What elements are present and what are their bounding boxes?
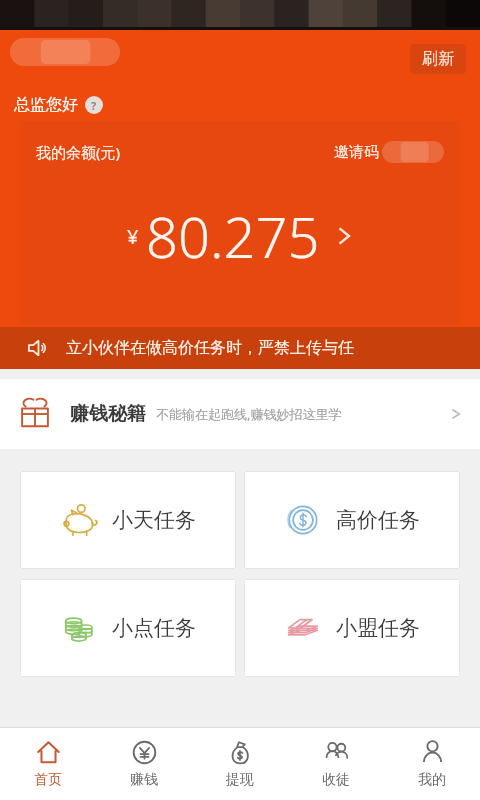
staticText: 我的余额(元): [36, 142, 121, 162]
button[interactable]: 首页: [0, 728, 96, 800]
staticText: 收徒: [322, 771, 350, 789]
button[interactable]: 赚钱: [96, 728, 192, 800]
staticText: 刷新: [422, 49, 454, 69]
button[interactable]: 我的余额(元): [20, 121, 460, 325]
staticText: 不能输在起跑线,赚钱妙招这里学: [156, 405, 342, 423]
staticText: 首页: [34, 771, 62, 789]
other: Announcement: [26, 336, 50, 360]
staticText: 赚钱秘籍: [70, 402, 146, 426]
button[interactable]: 我的: [384, 728, 480, 800]
staticText: 提现: [226, 771, 254, 789]
staticText: 立小伙伴在做高价任务时，严禁上传与任: [66, 338, 354, 358]
staticText: 80.275: [146, 198, 320, 274]
staticText: 小点任务: [112, 615, 196, 641]
button[interactable]: 提现: [192, 728, 288, 800]
staticText: 小盟任务: [336, 615, 420, 641]
button[interactable]: 赚钱秘籍: [0, 379, 480, 449]
staticText: 邀请码: [334, 143, 379, 162]
button[interactable]: 高价任务: [244, 471, 460, 569]
staticText: ?: [91, 98, 97, 113]
button[interactable]: 小盟任务: [244, 579, 460, 677]
button[interactable]: 刷新: [410, 44, 466, 74]
staticText: 高价任务: [336, 507, 420, 533]
staticText: 我的: [418, 771, 446, 789]
staticText: ¥: [127, 223, 139, 250]
button[interactable]: 小点任务: [20, 579, 236, 677]
button[interactable]: Announcement: [0, 327, 480, 369]
staticText: 小天任务: [112, 507, 196, 533]
button[interactable]: 收徒: [288, 728, 384, 800]
staticText: 赚钱: [130, 771, 158, 789]
button[interactable]: 小天任务: [20, 471, 236, 569]
staticText: 总监您好: [14, 95, 78, 115]
button[interactable]: Help: [85, 96, 103, 114]
